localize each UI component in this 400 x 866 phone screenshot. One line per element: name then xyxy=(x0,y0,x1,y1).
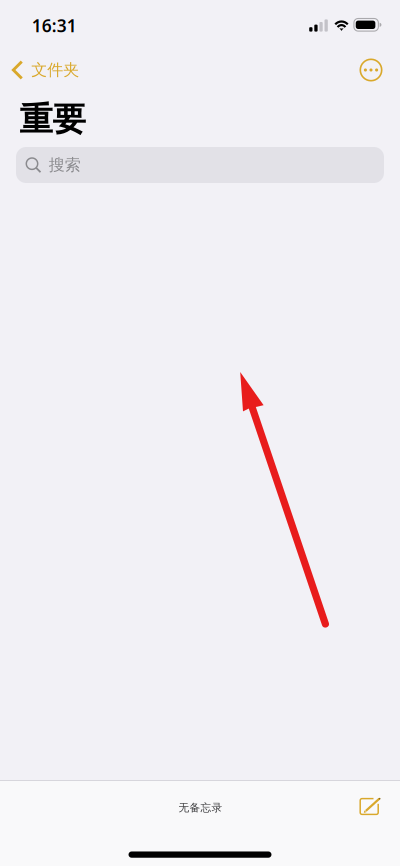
button[interactable]: More xyxy=(349,48,393,92)
staticText: 无备忘录 xyxy=(178,801,222,814)
staticText: 重要 xyxy=(19,99,85,140)
staticText: 16:31 xyxy=(32,14,77,37)
button[interactable]: 搜索 xyxy=(16,147,384,183)
button[interactable]: 文件夹 xyxy=(1,53,87,87)
staticText: 搜索 xyxy=(49,155,81,175)
staticText: 文件夹 xyxy=(31,60,79,80)
button[interactable]: New Note xyxy=(348,786,392,830)
